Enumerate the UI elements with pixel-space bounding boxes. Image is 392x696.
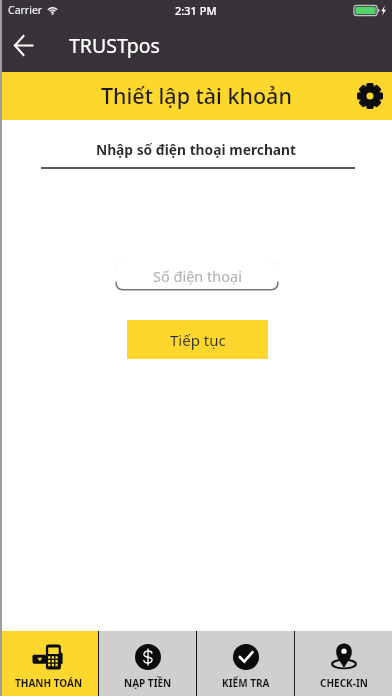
staticText: Tiếp tục (170, 330, 226, 350)
button[interactable]: KIỂM TRA (197, 631, 294, 696)
staticText: THANH TOÁN (15, 676, 83, 690)
staticText: KIỂM TRA (222, 676, 270, 690)
staticText: Nhập số điện thoại merchant (0, 140, 392, 159)
staticText: Carrier (8, 3, 43, 17)
staticText: CHECK-IN (320, 676, 368, 690)
button[interactable]: THANH TOÁN (0, 631, 98, 696)
staticText: 2:31 PM (175, 3, 217, 18)
staticText: Số điện thoại (153, 266, 242, 286)
staticText: TRUSTpos (69, 32, 160, 59)
button[interactable]: Back (3, 25, 43, 65)
button[interactable]: Số điện thoại (115, 260, 279, 291)
staticText: Thiết lập tài khoản (101, 81, 292, 110)
button[interactable]: Settings (350, 76, 390, 116)
button[interactable]: Tiếp tục (127, 320, 268, 359)
staticText: NẠP TIỀN (124, 676, 172, 690)
button[interactable]: NẠP TIỀN (99, 631, 196, 696)
button[interactable]: CHECK-IN (295, 631, 392, 696)
